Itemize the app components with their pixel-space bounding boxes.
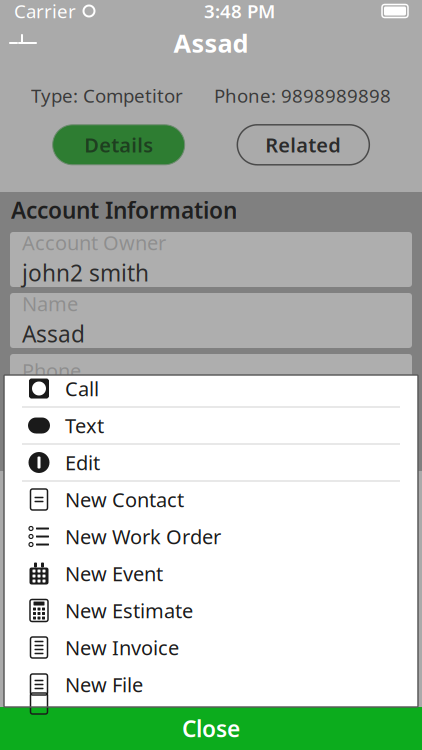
staticText: New Estimate: [65, 597, 193, 624]
staticText: Call: [65, 375, 99, 402]
button[interactable]: New Invoice: [4, 629, 418, 666]
button[interactable]: New File: [4, 666, 418, 703]
staticText: New File: [65, 671, 143, 698]
staticText: Text: [65, 412, 104, 439]
staticText: Name: [22, 290, 78, 317]
staticText: Assad: [173, 26, 248, 60]
button[interactable]: New Estimate: [4, 592, 418, 629]
button[interactable]: New Contact: [4, 481, 418, 518]
staticText: Assad: [22, 319, 85, 349]
staticText: Related: [265, 131, 341, 158]
staticText: 3:48 PM: [204, 0, 275, 23]
staticText: New Contact: [65, 486, 184, 513]
button[interactable]: Edit: [4, 444, 418, 481]
button[interactable]: Close: [0, 707, 422, 750]
button[interactable]: Text: [4, 407, 418, 444]
button[interactable]: New Event: [4, 555, 418, 592]
staticText: Edit: [65, 449, 100, 476]
staticText: Account Owner: [22, 229, 166, 256]
staticText: Phone: 9898989898: [214, 83, 391, 108]
staticText: Close: [182, 713, 240, 743]
button[interactable]: Details: [53, 125, 185, 165]
staticText: New Event: [65, 560, 163, 587]
button[interactable]: Back: [0, 23, 44, 63]
staticText: Type: Competitor: [31, 83, 183, 108]
staticText: Carrier: [14, 0, 76, 23]
staticText: Account Information: [11, 195, 237, 225]
staticText: Details: [84, 131, 153, 158]
staticText: Phone: [22, 357, 81, 384]
button[interactable]: New Work Order: [4, 518, 418, 555]
button[interactable]: Related: [237, 125, 369, 165]
button[interactable]: Call: [4, 370, 418, 407]
staticText: New Invoice: [65, 634, 179, 661]
staticText: john2 smith: [22, 258, 149, 288]
staticText: New Work Order: [65, 523, 221, 550]
